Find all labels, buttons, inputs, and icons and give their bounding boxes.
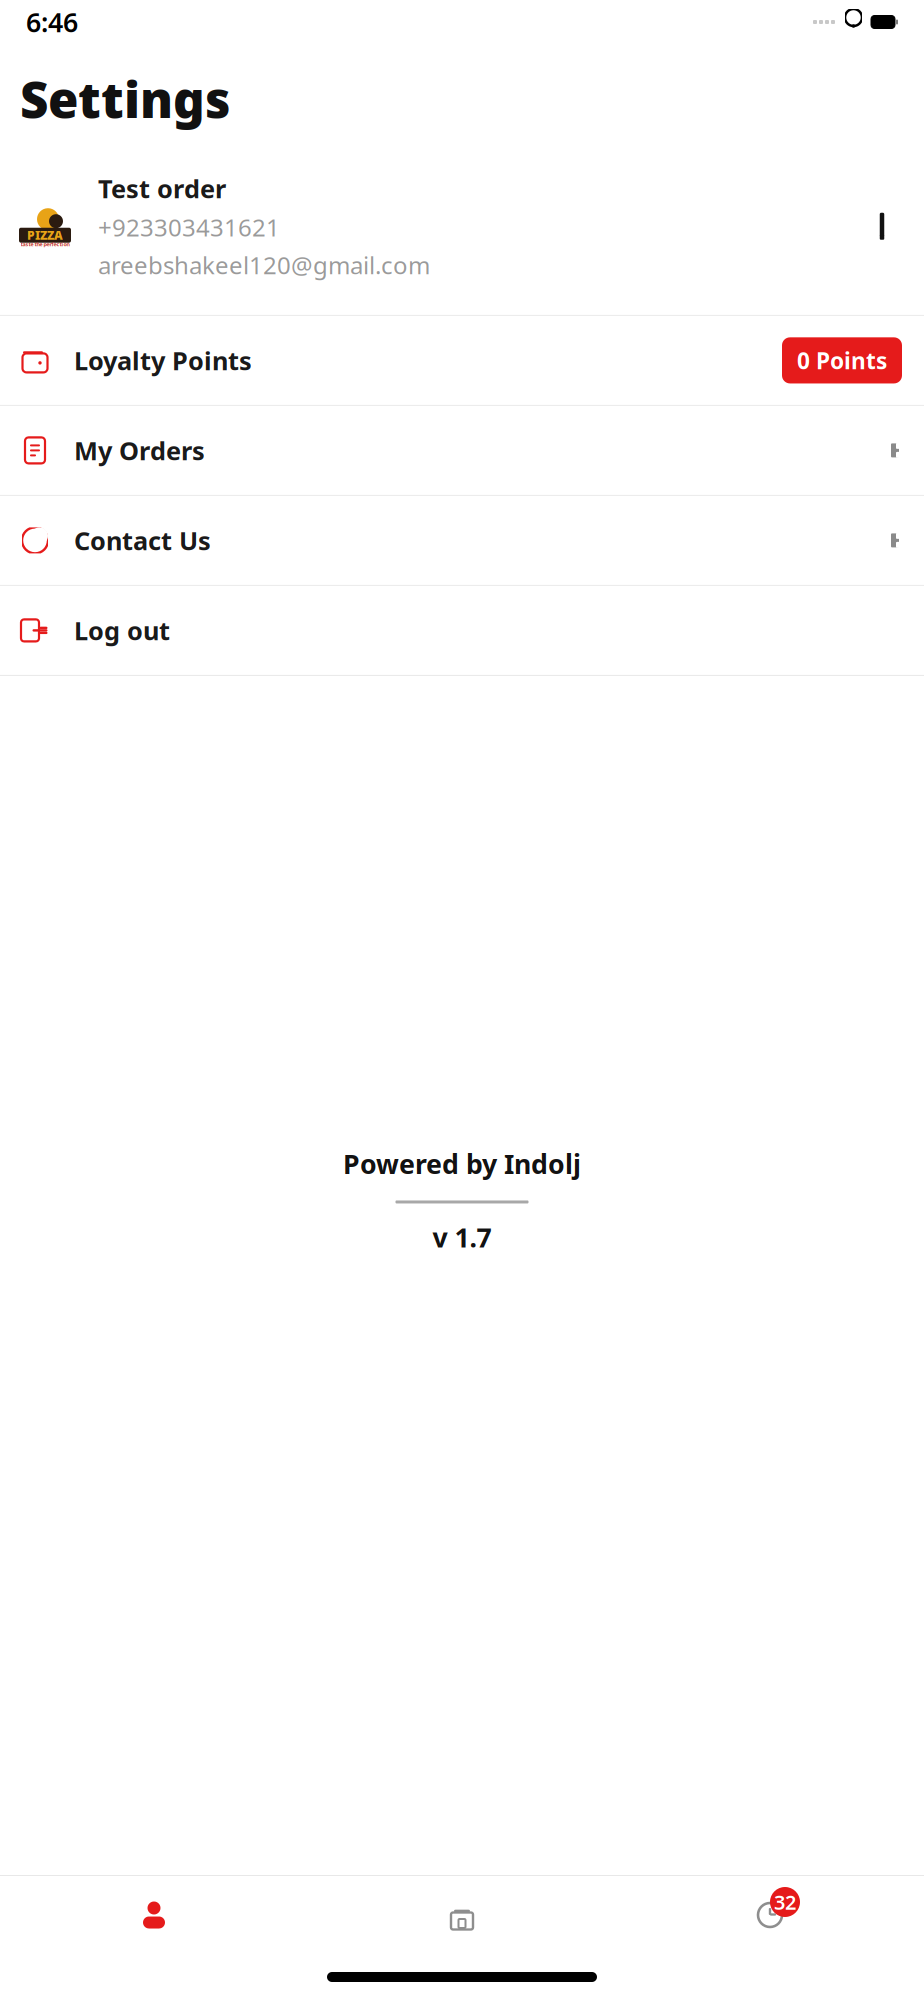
button[interactable]: History bbox=[616, 1876, 924, 1954]
staticText: Settings bbox=[20, 66, 231, 131]
staticText: Log out bbox=[74, 614, 170, 647]
staticText: +923303431621 bbox=[98, 211, 280, 243]
staticText: 6:46 bbox=[26, 4, 78, 40]
staticText: taste the perfection bbox=[20, 241, 69, 248]
button[interactable]: Loyalty Points bbox=[0, 316, 924, 406]
staticText: PIZZA bbox=[27, 227, 63, 243]
button[interactable]: My Orders bbox=[0, 406, 924, 496]
button[interactable]: PIZZA bbox=[0, 171, 924, 281]
button[interactable]: Profile bbox=[0, 1876, 308, 1954]
button[interactable]: Home bbox=[308, 1876, 616, 1954]
staticText: Powered by Indolj bbox=[343, 1146, 581, 1181]
staticText: v 1.7 bbox=[432, 1219, 491, 1255]
staticText: Contact Us bbox=[74, 524, 211, 557]
staticText: 0 Points bbox=[797, 345, 887, 375]
staticText: 32 bbox=[774, 1889, 796, 1915]
staticText: My Orders bbox=[74, 434, 205, 467]
staticText: areebshakeel120@gmail.com bbox=[98, 249, 430, 281]
button[interactable]: Log out bbox=[0, 586, 924, 676]
button[interactable]: Contact Us bbox=[0, 496, 924, 586]
staticText: Test order bbox=[98, 171, 226, 205]
staticText: Loyalty Points bbox=[74, 344, 252, 377]
